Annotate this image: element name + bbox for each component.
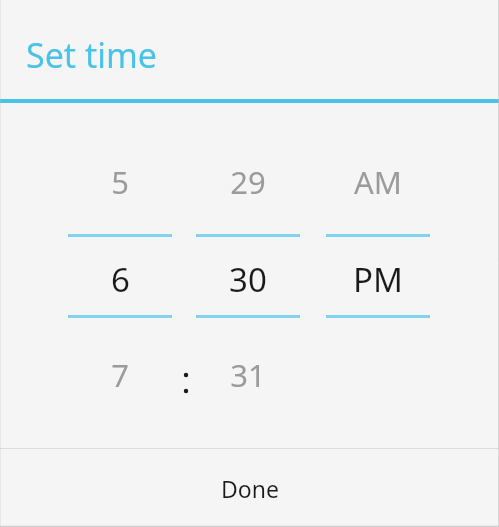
- staticText: 5: [111, 161, 129, 203]
- staticText: Done: [221, 473, 279, 504]
- staticText: 30: [229, 257, 267, 302]
- button[interactable]: Minute: [196, 143, 300, 408]
- button[interactable]: Done: [0, 449, 499, 527]
- staticText: 7: [111, 354, 129, 396]
- staticText: AM: [354, 161, 402, 203]
- staticText: Set time: [26, 32, 157, 78]
- staticText: 31: [230, 354, 266, 396]
- button[interactable]: Hour: [68, 143, 172, 408]
- button[interactable]: AM PM: [326, 143, 430, 408]
- staticText: 29: [230, 161, 266, 203]
- staticText: 6: [111, 257, 130, 302]
- staticText: PM: [353, 257, 403, 302]
